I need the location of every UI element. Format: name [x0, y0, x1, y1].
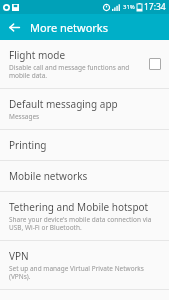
staticText: VPN	[9, 249, 29, 263]
staticText: Tethering and Mobile hotspot	[9, 200, 149, 214]
button[interactable]: Default messaging app	[0, 89, 169, 129]
staticText: Default messaging app	[9, 97, 118, 111]
button[interactable]: Mobile networks	[0, 161, 169, 191]
button[interactable]: Flight mode	[0, 40, 169, 88]
staticText: Share your device's mobile data connecti…	[9, 215, 161, 232]
button[interactable]: VPN	[0, 241, 169, 289]
button[interactable]: Tethering and Mobile hotspot	[0, 192, 169, 240]
staticText: More networks	[30, 20, 108, 35]
staticText: Printing	[9, 138, 47, 152]
staticText: 31%	[123, 3, 135, 11]
staticText: Mobile networks	[9, 169, 88, 183]
button[interactable]: Flight mode checkbox	[149, 58, 161, 70]
button[interactable]: Printing	[0, 130, 169, 160]
button[interactable]: Back	[4, 17, 24, 37]
staticText: Flight mode	[9, 48, 66, 62]
staticText: Messages	[9, 112, 40, 121]
staticText: 17:34	[144, 1, 166, 13]
staticText: Disable call and message functions and m…	[9, 63, 143, 80]
staticText: Set up and manage Virtual Private Networ…	[9, 264, 161, 281]
